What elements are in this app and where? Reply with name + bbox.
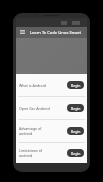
- button[interactable]: Begin: [67, 104, 84, 112]
- button[interactable]: Open Gsc Android: [16, 97, 87, 119]
- staticText: Begin: [71, 129, 81, 134]
- button[interactable]: Begin: [67, 127, 84, 135]
- staticText: Begin: [71, 106, 81, 111]
- staticText: Begin: [71, 83, 81, 88]
- staticText: Advantage of: [19, 126, 42, 131]
- staticText: Limitations of: [19, 148, 43, 153]
- staticText: Begin: [71, 151, 81, 156]
- button[interactable]: Begin: [67, 149, 84, 157]
- staticText: android: [19, 153, 33, 158]
- staticText: android: [19, 131, 33, 136]
- staticText: Open Gsc Android: [19, 106, 50, 111]
- button[interactable]: What is Android: [16, 74, 87, 96]
- button[interactable]: Open navigation menu: [18, 28, 27, 37]
- button[interactable]: Advantage of: [16, 120, 87, 142]
- staticText: What is Android: [19, 83, 46, 88]
- button[interactable]: Begin: [67, 81, 84, 89]
- staticText: Learn To Code Linux Smart: [28, 30, 83, 35]
- button[interactable]: Limitations of: [16, 143, 87, 163]
